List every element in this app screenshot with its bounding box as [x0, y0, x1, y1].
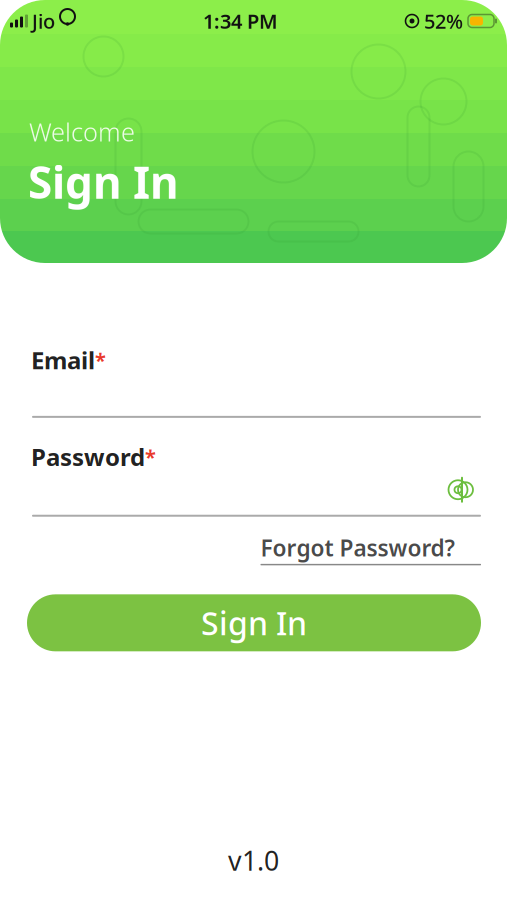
staticText: v1.0	[228, 843, 279, 878]
staticText: Email	[31, 344, 95, 376]
button[interactable]: Email field	[0, 376, 507, 418]
staticText: Jio	[32, 8, 55, 34]
staticText: Sign In	[201, 602, 307, 644]
button[interactable]: Forgot Password?	[260, 533, 481, 565]
button[interactable]: Password field	[32, 473, 481, 517]
staticText: 1:34 PM	[203, 8, 278, 34]
staticText: Sign In	[28, 153, 179, 211]
staticText: *	[95, 347, 106, 373]
staticText: *	[145, 443, 156, 470]
staticText: Password	[31, 441, 145, 473]
button[interactable]: Sign In	[27, 594, 481, 651]
staticText: 52%	[424, 8, 463, 34]
staticText: Welcome	[29, 115, 135, 148]
button[interactable]: Show password	[441, 473, 481, 507]
staticText: Forgot Password?	[260, 533, 454, 563]
